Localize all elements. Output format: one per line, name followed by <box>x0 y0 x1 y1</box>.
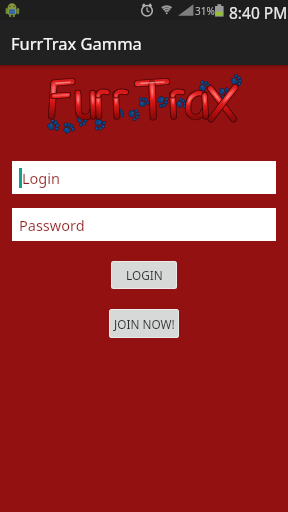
button[interactable]: JOIN NOW! <box>109 309 179 338</box>
staticText: 8:40 PM <box>229 2 288 22</box>
staticText: JOIN NOW! <box>114 316 175 332</box>
staticText: 31% <box>195 4 215 18</box>
staticText: Password <box>19 215 85 235</box>
staticText: FurrTrax Gamma <box>11 32 142 54</box>
staticText: LOGIN <box>126 267 163 283</box>
staticText: Login <box>22 168 60 188</box>
button[interactable]: Password <box>12 208 276 241</box>
button[interactable]: Login <box>12 161 276 194</box>
button[interactable]: LOGIN <box>111 261 177 289</box>
button[interactable]: FurrTrax Gamma <box>0 20 288 65</box>
